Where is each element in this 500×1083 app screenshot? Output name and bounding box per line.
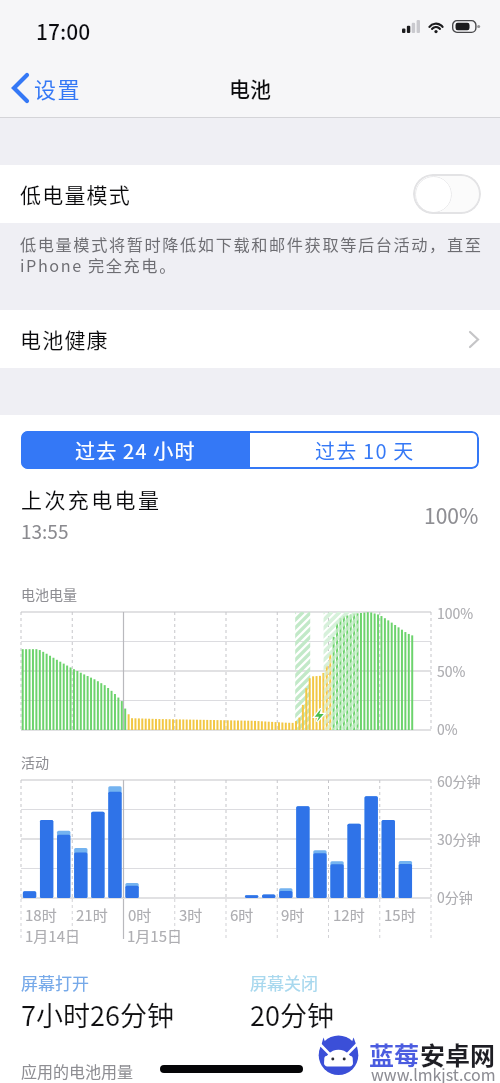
staticText: 屏幕打开	[21, 970, 89, 995]
staticText: 电池	[229, 73, 271, 103]
staticText: 20分钟	[250, 995, 334, 1034]
staticText: 15时	[384, 904, 416, 926]
staticText: 12时	[333, 904, 365, 926]
staticText: 蓝莓	[369, 1036, 420, 1072]
staticText: 0时	[128, 904, 152, 926]
button[interactable]: 过去 24 小时	[21, 431, 250, 469]
staticText: 100%	[424, 500, 479, 530]
button[interactable]: 低电量模式开关	[413, 174, 481, 214]
staticText: 屏幕关闭	[250, 970, 318, 995]
staticText: 60分钟	[437, 771, 481, 791]
staticText: 上次充电电量	[21, 484, 162, 514]
staticText: 21时	[76, 904, 108, 926]
staticText: 1月14日	[25, 925, 80, 947]
button[interactable]: 设置	[0, 64, 94, 112]
staticText: 7小时26分钟	[21, 995, 174, 1034]
staticText: 活动	[21, 752, 49, 772]
staticText: 1月15日	[127, 925, 182, 947]
staticText: 13:55	[21, 517, 69, 545]
staticText: 50%	[437, 661, 466, 681]
staticText: 电池健康	[20, 324, 109, 354]
staticText: 低电量模式	[20, 179, 131, 209]
staticText: 电池电量	[21, 584, 77, 604]
button[interactable]: 低电量模式	[0, 165, 500, 223]
staticText: 17:00	[36, 16, 91, 46]
staticText: 过去 24 小时	[75, 436, 196, 465]
staticText: www.lmkjst.com	[371, 1062, 496, 1083]
staticText: 安卓网	[420, 1036, 496, 1072]
staticText: 18时	[25, 904, 57, 926]
staticText: 9时	[281, 904, 305, 926]
staticText: 0%	[437, 719, 458, 739]
staticText: 100%	[437, 603, 474, 623]
staticText: 低电量模式将暂时降低如下载和邮件获取等后台活动，直至 iPhone 完全充电。	[20, 232, 498, 277]
staticText: 过去 10 天	[315, 436, 415, 465]
button[interactable]: 电池健康	[0, 310, 500, 368]
staticText: 30分钟	[437, 829, 481, 849]
staticText: 应用的电池用量	[21, 1059, 134, 1082]
staticText: 3时	[179, 904, 203, 926]
staticText: 设置	[34, 72, 82, 104]
staticText: 0分钟	[437, 887, 473, 907]
button[interactable]: 过去 10 天	[250, 431, 479, 469]
staticText: 6时	[230, 904, 254, 926]
